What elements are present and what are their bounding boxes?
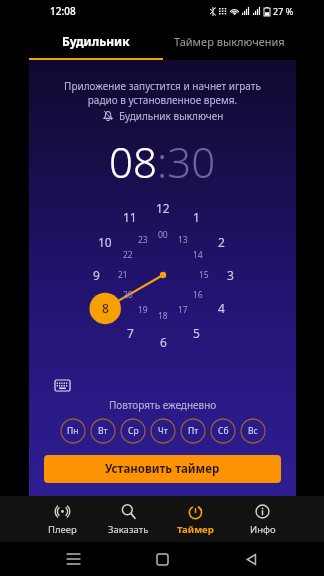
staticText: Таймер выключения	[174, 34, 285, 49]
button[interactable]: 7	[118, 321, 142, 345]
staticText: 23	[138, 234, 148, 246]
staticText: 12:08	[50, 4, 76, 18]
button[interactable]: 13	[173, 230, 193, 250]
button[interactable]: Home	[118, 542, 207, 576]
button[interactable]: 23	[133, 230, 153, 250]
staticText: 00	[158, 229, 168, 241]
staticText: Приложение запустится и начнет играть ра…	[64, 79, 261, 107]
staticText: 08:30	[109, 133, 216, 190]
staticText: Вт	[98, 425, 108, 437]
button[interactable]: 2	[209, 230, 233, 254]
staticText: 4	[218, 300, 225, 316]
staticText: 9	[93, 267, 100, 283]
staticText: 5	[193, 325, 200, 341]
button[interactable]: Recent apps	[29, 542, 118, 576]
staticText: 20	[123, 289, 133, 301]
button[interactable]: 1	[184, 205, 208, 229]
staticText: 1	[193, 209, 200, 225]
staticText: 27 %	[273, 5, 294, 17]
staticText: Инфо	[250, 523, 276, 536]
staticText: Пт	[188, 425, 199, 437]
staticText: 16	[193, 289, 203, 301]
button[interactable]: Сб	[210, 418, 236, 444]
staticText: 7	[127, 325, 134, 341]
staticText: Повторять ежедневно	[109, 398, 217, 412]
staticText: 12	[156, 200, 170, 216]
button[interactable]: 20	[118, 285, 138, 305]
button[interactable]: Установить таймер	[44, 455, 281, 483]
staticText: 10	[98, 234, 112, 250]
staticText: 11	[123, 209, 137, 225]
staticText: 21	[118, 269, 128, 281]
staticText: Пн	[67, 425, 79, 437]
staticText: Будильник выключен	[119, 109, 224, 123]
staticText: 13	[178, 234, 188, 246]
staticText: 19	[138, 304, 148, 316]
button[interactable]: Пт	[180, 418, 206, 444]
button[interactable]: Чт	[150, 418, 176, 444]
button[interactable]: 10	[93, 230, 117, 254]
button[interactable]: 19	[133, 300, 153, 320]
staticText: Плеер	[48, 523, 77, 536]
button[interactable]: Таймер	[162, 496, 229, 542]
button[interactable]: 6	[151, 330, 175, 354]
button[interactable]: 15	[194, 265, 214, 285]
button[interactable]: 21	[113, 265, 133, 285]
button[interactable]: Ср	[120, 418, 146, 444]
button[interactable]: Будильник	[29, 22, 162, 60]
button[interactable]: Пн	[60, 418, 86, 444]
button[interactable]: Вс	[240, 418, 266, 444]
button[interactable]: 18	[153, 306, 173, 326]
button[interactable]: Таймер выключения	[162, 22, 296, 60]
button[interactable]: Back	[207, 542, 296, 576]
button[interactable]: Switch to keyboard input	[51, 374, 73, 396]
staticText: Сб	[218, 425, 229, 437]
staticText: Чт	[158, 425, 168, 437]
staticText: 14	[193, 249, 203, 261]
staticText: 22	[123, 249, 133, 261]
button[interactable]: 11	[118, 205, 142, 229]
staticText: Установить таймер	[105, 461, 220, 477]
button[interactable]: 9	[84, 263, 108, 287]
button[interactable]: Плеер	[29, 496, 95, 542]
button[interactable]: 4	[209, 296, 233, 320]
button[interactable]: 17	[173, 300, 193, 320]
staticText: 18	[158, 310, 168, 322]
staticText: 17	[178, 304, 188, 316]
button[interactable]: 22	[118, 245, 138, 265]
staticText: Будильник	[62, 33, 130, 49]
button[interactable]: 14	[188, 245, 208, 265]
staticText: 2	[218, 234, 225, 250]
button[interactable]: Вт	[90, 418, 116, 444]
button[interactable]: 12	[151, 196, 175, 220]
button[interactable]: 16	[188, 285, 208, 305]
button[interactable]: 3	[218, 263, 242, 287]
staticText: Таймер	[177, 523, 214, 536]
button[interactable]: 00	[153, 225, 173, 245]
staticText: 15	[199, 269, 209, 281]
staticText: Ср	[128, 425, 139, 437]
staticText: 3	[227, 267, 234, 283]
button[interactable]: 8	[93, 296, 117, 320]
button[interactable]: Заказать	[95, 496, 162, 542]
staticText: 6	[160, 334, 167, 350]
button[interactable]: 5	[184, 321, 208, 345]
button[interactable]: Инфо	[229, 496, 296, 542]
staticText: 8	[102, 300, 109, 316]
staticText: Вс	[248, 425, 258, 437]
staticText: Заказать	[108, 523, 149, 536]
